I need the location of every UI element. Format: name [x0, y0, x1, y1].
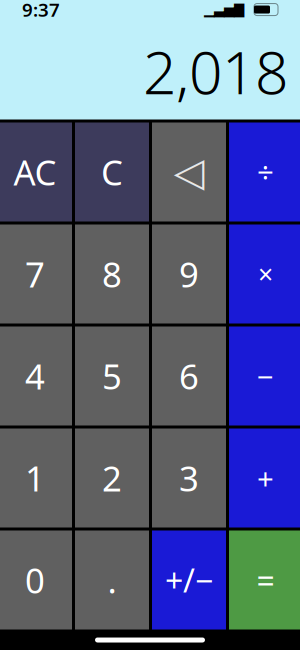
staticText: 7	[25, 251, 45, 297]
button[interactable]: 1	[0, 428, 72, 527]
staticText: 6	[179, 353, 199, 399]
staticText: C	[101, 149, 123, 195]
staticText: =	[256, 559, 274, 601]
button[interactable]: 4	[0, 326, 72, 425]
button[interactable]: C	[75, 122, 149, 221]
button[interactable]: 6	[152, 326, 226, 425]
button[interactable]: ×	[229, 224, 300, 323]
button[interactable]: Backspace	[152, 122, 226, 221]
staticText: ◁	[173, 149, 204, 195]
button[interactable]: =	[229, 530, 300, 629]
staticText: ×	[258, 256, 273, 292]
staticText: +/−	[165, 559, 213, 601]
staticText: −	[257, 356, 274, 395]
staticText: 9:37	[22, 0, 60, 22]
staticText: +	[257, 458, 274, 497]
staticText: 8	[102, 251, 122, 297]
staticText: 2,018	[143, 32, 288, 110]
staticText: 2	[102, 455, 122, 501]
button[interactable]: 3	[152, 428, 226, 527]
staticText: ▁▃▅▇	[204, 2, 244, 17]
button[interactable]: −	[229, 326, 300, 425]
button[interactable]: 9	[152, 224, 226, 323]
button[interactable]: 0	[0, 530, 72, 629]
button[interactable]: .	[75, 530, 149, 629]
staticText: 1	[25, 455, 45, 501]
staticText: 4	[25, 353, 45, 399]
staticText: 3	[179, 455, 199, 501]
button[interactable]: 7	[0, 224, 72, 323]
staticText: .	[107, 557, 116, 603]
button[interactable]: ÷	[229, 122, 300, 221]
button[interactable]: 2	[75, 428, 149, 527]
staticText: 9	[179, 251, 199, 297]
staticText: 5	[102, 353, 122, 399]
button[interactable]: +	[229, 428, 300, 527]
staticText: 0	[25, 557, 45, 603]
staticText: ÷	[257, 152, 274, 191]
button[interactable]: AC	[0, 122, 72, 221]
staticText: AC	[13, 149, 56, 195]
button[interactable]: 5	[75, 326, 149, 425]
button[interactable]: 8	[75, 224, 149, 323]
button[interactable]: +/−	[152, 530, 226, 629]
